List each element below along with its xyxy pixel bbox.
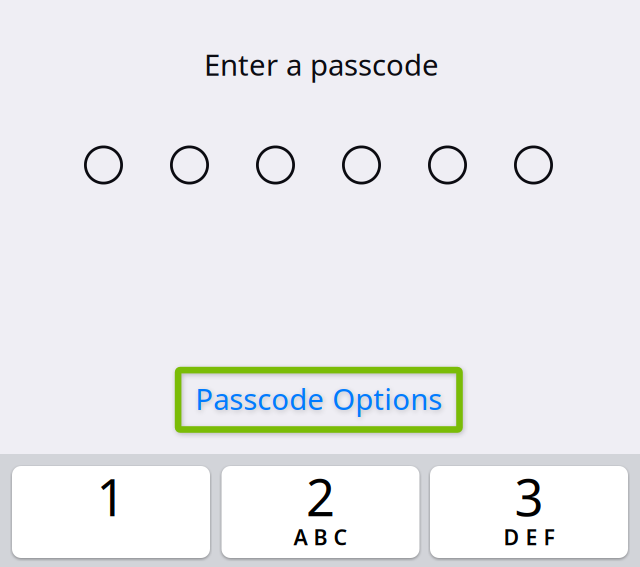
button[interactable]: 1 [12, 466, 210, 558]
staticText: 2 [306, 463, 335, 530]
staticText: 3 [514, 463, 543, 530]
staticText: Passcode Options [195, 379, 442, 418]
button[interactable]: Passcode Options [175, 367, 463, 433]
button[interactable]: 2 [221, 466, 419, 558]
staticText: Enter a passcode [204, 45, 439, 84]
staticText: D E F [503, 523, 554, 551]
staticText: A B C [293, 523, 347, 551]
staticText: 1 [96, 463, 125, 530]
button[interactable]: 3 [430, 466, 628, 558]
